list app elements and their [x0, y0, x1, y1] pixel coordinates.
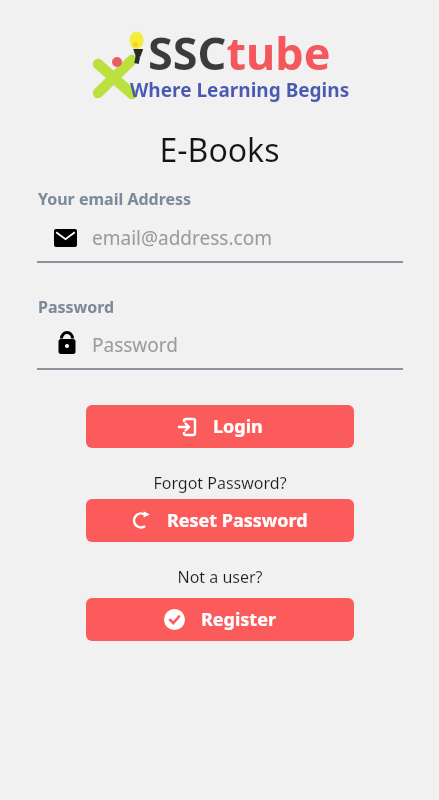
- staticText: Login: [213, 414, 263, 439]
- button[interactable]: Reset Password: [86, 499, 354, 542]
- staticText: Where Learning Begins: [130, 77, 350, 103]
- staticText: Password: [38, 296, 115, 318]
- staticText: Not a user?: [177, 566, 263, 588]
- staticText: Forgot Password?: [153, 472, 287, 494]
- staticText: Your email Address: [38, 188, 192, 210]
- button[interactable]: Register: [86, 598, 354, 641]
- staticText: Register: [201, 607, 276, 632]
- staticText: email@address.com: [92, 225, 272, 251]
- staticText: E-Books: [159, 128, 280, 172]
- staticText: Password: [92, 332, 178, 358]
- button[interactable]: Login: [86, 405, 354, 448]
- staticText: SSCtube: [148, 22, 331, 83]
- staticText: Reset Password: [167, 508, 308, 533]
